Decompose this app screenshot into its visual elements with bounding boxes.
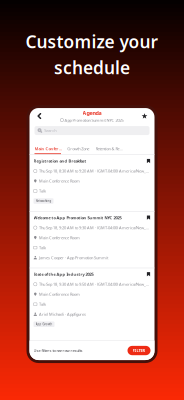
staticText: Main Conference Room	[39, 178, 80, 184]
staticText: Welcome to App Promotion Summit NYC 2025	[33, 215, 121, 220]
button[interactable]: FILTER	[127, 346, 150, 355]
button[interactable]: Main Conference Room	[32, 137, 63, 154]
staticText: Customize your	[25, 30, 158, 53]
button[interactable]: State of the App Industry 2025	[29, 268, 154, 324]
staticText: Ariel Michaeli · Appfigures	[39, 312, 86, 317]
button[interactable]: Welcome to App Promotion Summit NYC 2025	[29, 212, 154, 268]
staticText: Thu Sep 18, 8:30 AM to 9:20 AM · (GMT-04…	[39, 168, 149, 174]
button[interactable]: Back	[33, 109, 45, 123]
staticText: Talk	[39, 188, 46, 194]
staticText: Main Conference Room	[39, 235, 80, 240]
staticText: Main Conference Room	[34, 146, 61, 151]
staticText: FILTER	[132, 348, 145, 353]
staticText: Thu Sep 18, 9:30 AM to 9:50 AM · (GMT-04…	[39, 282, 149, 287]
staticText: Agenda	[82, 109, 101, 116]
staticText: App Promotion Summit NYC 2025	[64, 117, 123, 123]
staticText: Main Conference Room	[39, 292, 80, 297]
staticText: Growth Zone	[67, 146, 89, 151]
staticText: schedule	[54, 56, 130, 79]
button[interactable]: Growth Zone	[63, 137, 93, 154]
staticText: Thu Sep 18, 9:20 AM to 9:30 AM · (GMT-04…	[39, 225, 149, 230]
staticText: State of the App Industry 2025	[33, 272, 93, 277]
staticText: Registration and Breakfast	[33, 158, 86, 164]
staticText: Talk	[39, 302, 46, 307]
staticText: Use filters to narrow results	[33, 348, 82, 353]
staticText: James Cooper · App Promotion Summit	[39, 255, 108, 260]
button[interactable]: Favourites	[138, 109, 150, 123]
button[interactable]: Registration and Breakfast	[29, 155, 154, 211]
staticText: Search	[44, 128, 56, 133]
button[interactable]: Search	[34, 126, 149, 135]
staticText: Retention & Revenue Zone	[95, 146, 122, 151]
staticText: Networking	[35, 199, 51, 203]
staticText: App Growth	[35, 322, 52, 326]
staticText: Talk	[39, 245, 46, 250]
button[interactable]: Retention & Revenue Zone	[93, 137, 124, 154]
